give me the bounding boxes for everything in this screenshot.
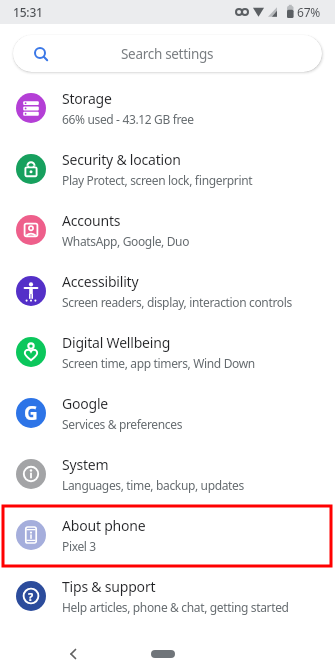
button[interactable]: Search settings <box>13 35 322 72</box>
button[interactable]: System <box>0 443 335 504</box>
staticText: ? <box>28 589 34 604</box>
staticText: Accessibility <box>62 272 139 291</box>
staticText: Storage <box>62 89 112 108</box>
button[interactable]: Storage <box>0 77 335 138</box>
button[interactable]: ? <box>0 565 335 626</box>
button[interactable] <box>138 629 198 669</box>
staticText: WhatsApp, Google, Duo <box>62 233 190 249</box>
button[interactable]: Accounts <box>0 199 335 260</box>
staticText: Accounts <box>62 211 121 230</box>
staticText: 66% used - 43.12 GB free <box>62 111 194 127</box>
staticText: Screen readers, display, interaction con… <box>62 294 292 310</box>
staticText: Help articles, phone & chat, getting sta… <box>62 599 289 615</box>
button[interactable]: Security & location <box>0 138 335 199</box>
staticText: 15:31 <box>13 4 43 20</box>
staticText: Tips & support <box>62 577 156 596</box>
staticText: Pixel 3 <box>62 538 96 554</box>
staticText: Google <box>62 394 109 413</box>
staticText: Digital Wellbeing <box>62 333 171 352</box>
staticText: Play Protect, screen lock, fingerprint <box>62 172 253 188</box>
button[interactable] <box>55 629 95 669</box>
staticText: About phone <box>62 516 146 535</box>
staticText: System <box>62 455 109 474</box>
staticText: Services & preferences <box>62 416 183 432</box>
staticText: 67% <box>297 4 321 20</box>
staticText: G <box>24 400 38 426</box>
staticText: Search settings <box>121 45 214 63</box>
button[interactable]: About phone <box>0 504 335 565</box>
staticText: Security & location <box>62 150 181 169</box>
button[interactable]: Accessibility <box>0 260 335 321</box>
button[interactable]: Digital Wellbeing <box>0 321 335 382</box>
staticText: Languages, time, backup, updates <box>62 477 244 493</box>
staticText: Screen time, app timers, Wind Down <box>62 355 255 371</box>
button[interactable]: G <box>0 382 335 443</box>
